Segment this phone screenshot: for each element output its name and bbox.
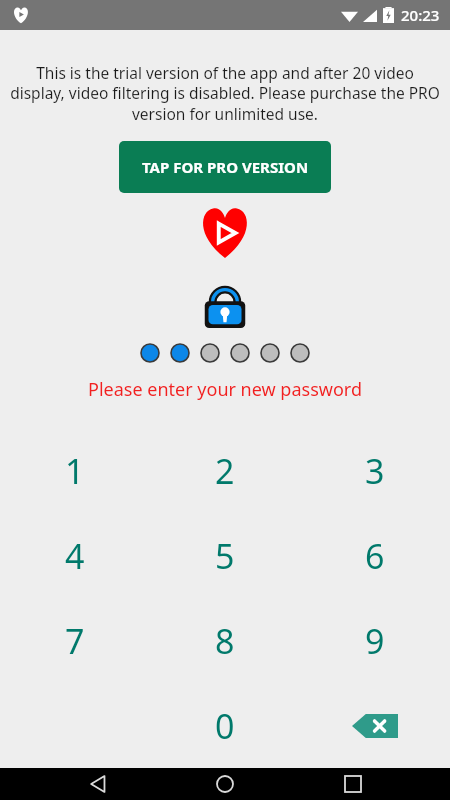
staticText: 9 (365, 618, 385, 664)
button[interactable]: 8 (150, 598, 300, 683)
button[interactable]: Back (68, 768, 128, 800)
button[interactable]: 2 (150, 428, 300, 513)
button[interactable]: 4 (0, 513, 150, 598)
button[interactable]: Backspace (300, 683, 450, 768)
button[interactable]: 9 (300, 598, 450, 683)
button[interactable]: Recent apps (323, 768, 383, 800)
button[interactable]: 3 (300, 428, 450, 513)
button[interactable]: Home (195, 768, 255, 800)
staticText: TAP FOR PRO VERSION (142, 157, 309, 177)
staticText: 20:23 (401, 5, 440, 25)
button[interactable]: TAP FOR PRO VERSION (119, 141, 331, 193)
staticText: 1 (65, 448, 85, 494)
staticText: 5 (215, 533, 235, 579)
staticText: 8 (215, 618, 235, 664)
staticText: 0 (215, 703, 235, 749)
staticText: This is the trial version of the app and… (10, 62, 440, 125)
button[interactable]: 6 (300, 513, 450, 598)
staticText: 7 (65, 618, 85, 664)
button[interactable]: 1 (0, 428, 150, 513)
button[interactable]: 5 (150, 513, 300, 598)
button[interactable]: 0 (150, 683, 300, 768)
staticText: 6 (365, 533, 385, 579)
button[interactable]: 7 (0, 598, 150, 683)
staticText: Please enter your new password (0, 377, 450, 402)
staticText: 2 (215, 448, 235, 494)
staticText: 3 (365, 448, 385, 494)
staticText: 4 (65, 533, 85, 579)
